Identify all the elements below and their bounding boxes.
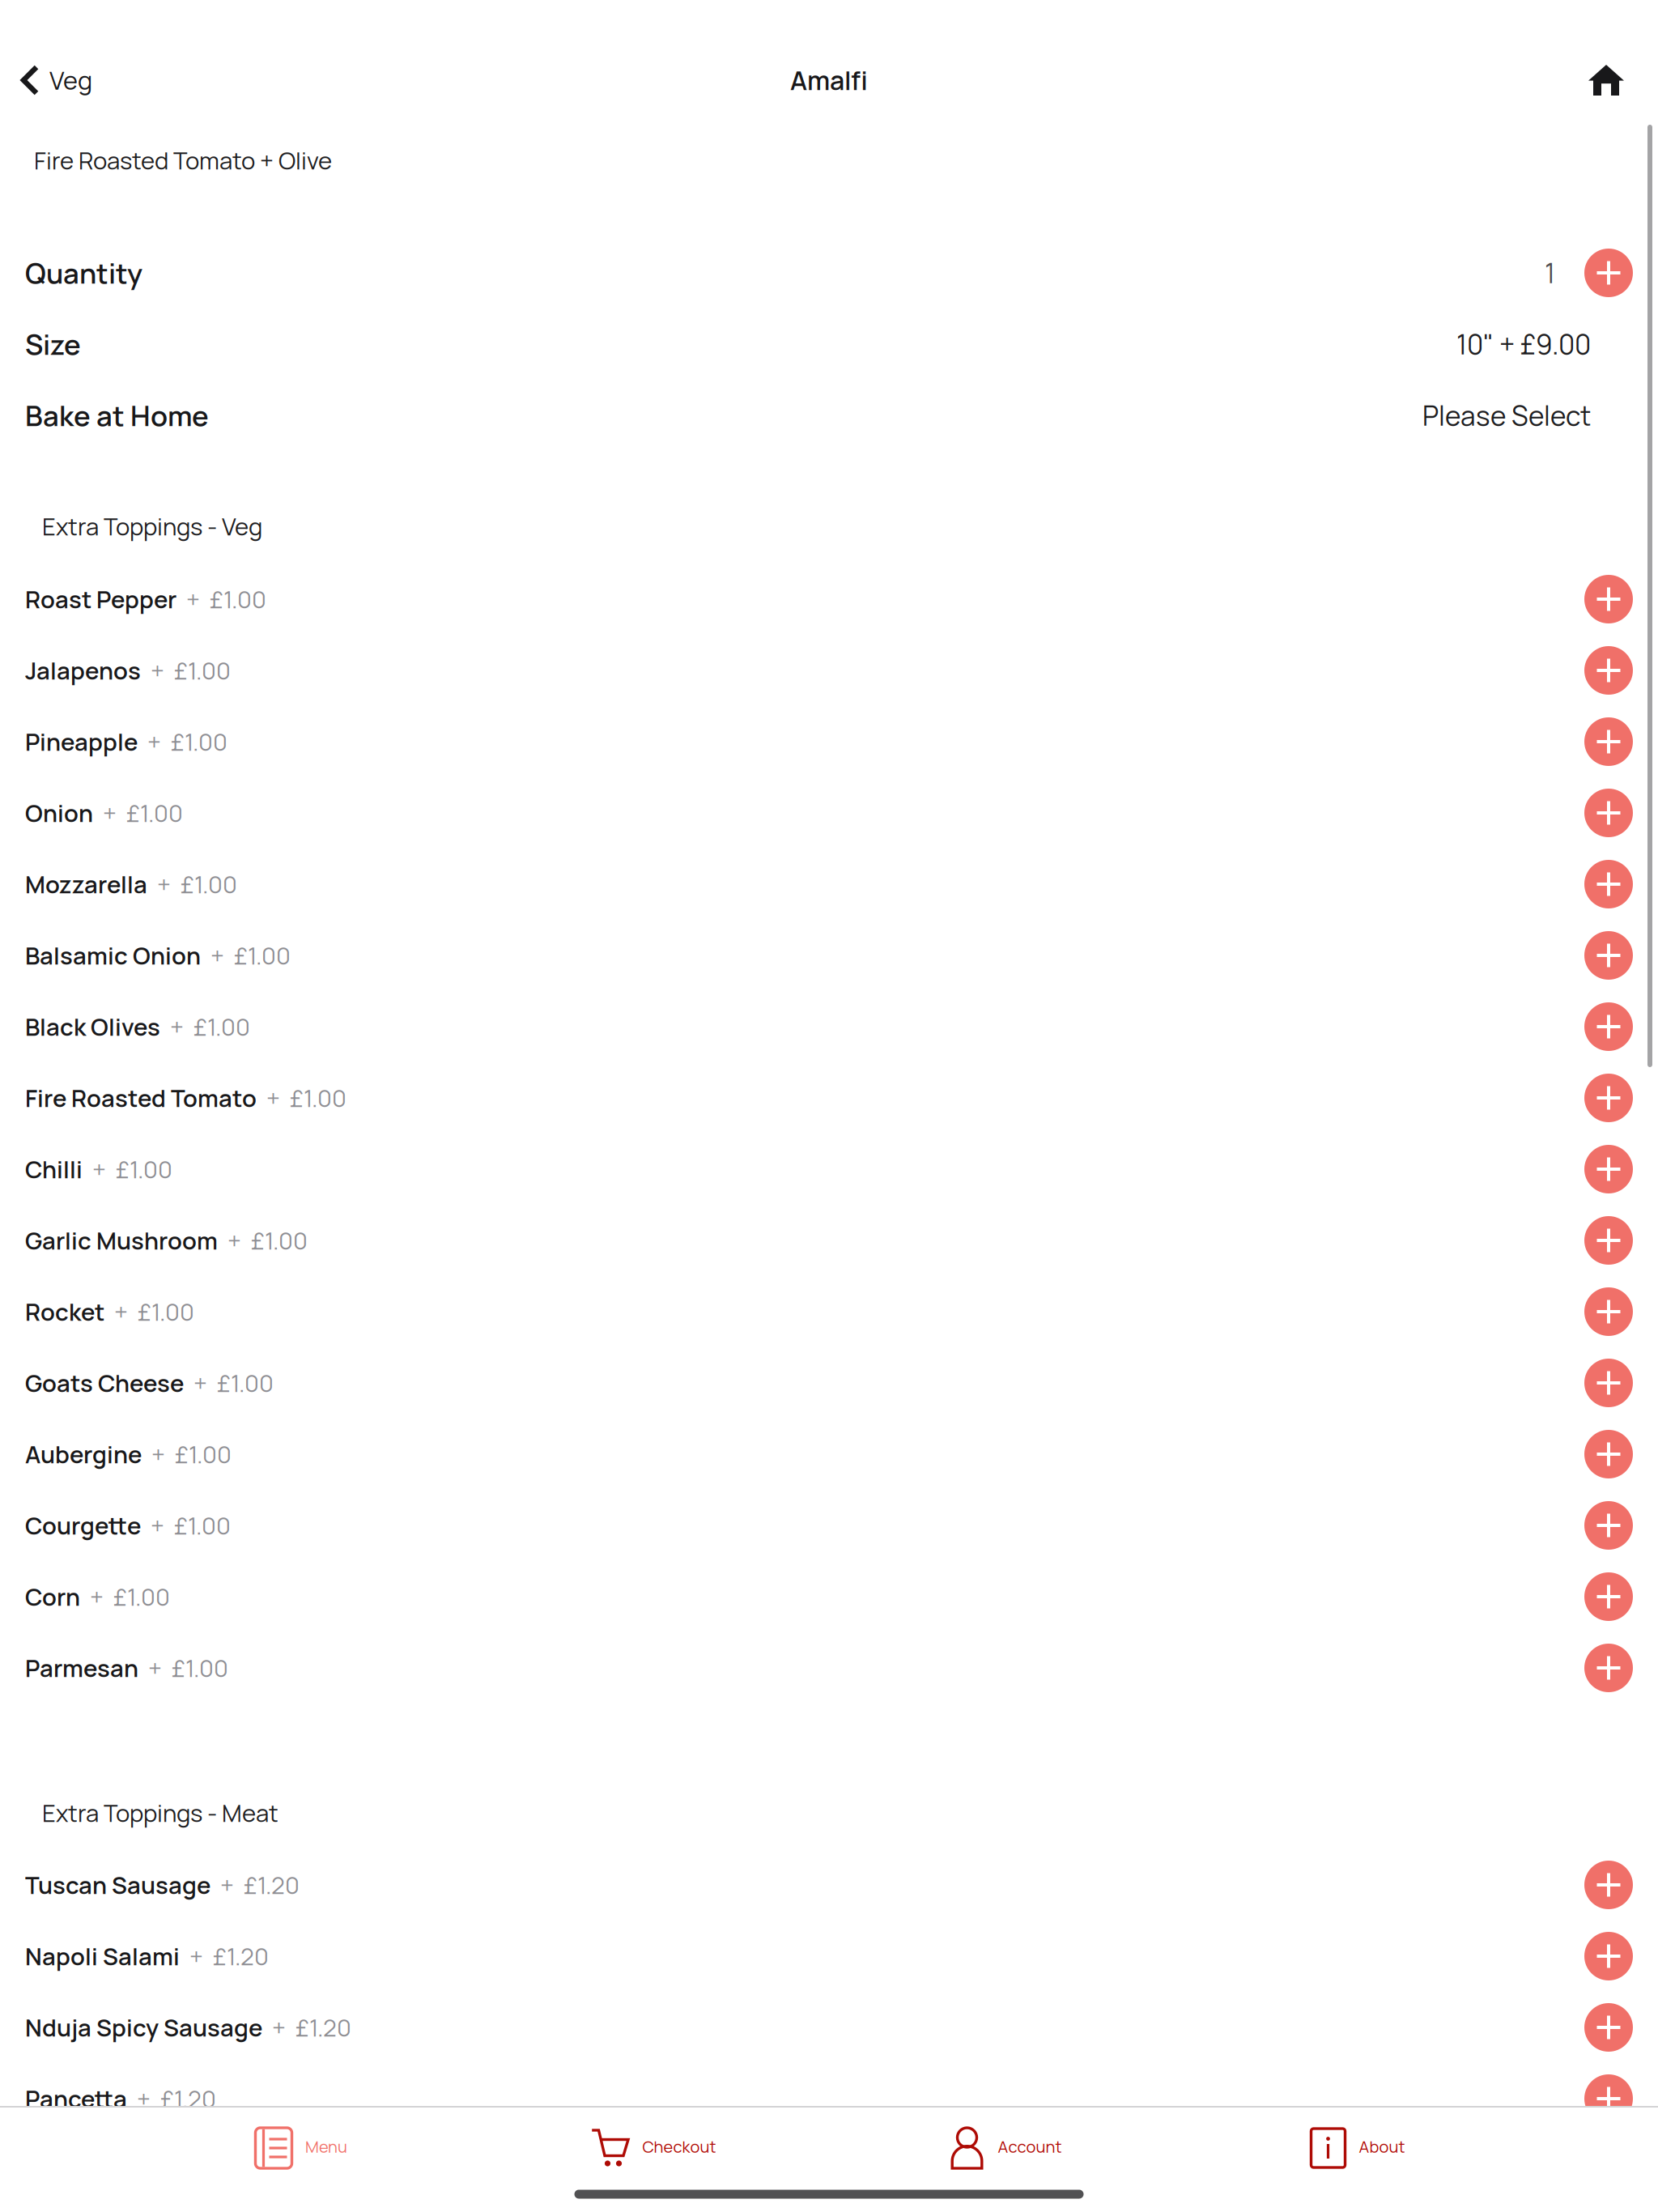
button[interactable]: Add (1584, 1359, 1633, 1407)
staticText: + £1.00 (218, 1224, 308, 1257)
button[interactable]: Add (1584, 860, 1633, 908)
button[interactable]: Parmesan (0, 1632, 1658, 1704)
staticText: Rocket (25, 1295, 104, 1328)
button[interactable]: Add (1584, 1861, 1633, 1909)
staticText: Extra Toppings - Meat (42, 1797, 278, 1829)
button[interactable]: Black Olives (0, 991, 1658, 1062)
staticText: + £1.00 (257, 1082, 346, 1114)
button[interactable]: Aubergine (0, 1419, 1658, 1490)
staticText: About (1359, 2135, 1405, 2157)
staticText: Garlic Mushroom (25, 1224, 218, 1257)
staticText: Onion (25, 797, 93, 829)
button[interactable]: Add (1584, 575, 1633, 623)
button[interactable]: Pineapple (0, 706, 1658, 777)
button[interactable]: Add (1584, 646, 1633, 695)
button[interactable]: Menu (125, 2108, 477, 2185)
staticText: Size (25, 325, 81, 363)
staticText: Veg (49, 63, 92, 97)
staticText: + £1.00 (83, 1153, 172, 1185)
button[interactable]: Chilli (0, 1134, 1658, 1205)
staticText: 1 (1545, 254, 1555, 291)
button[interactable]: About (1181, 2108, 1533, 2185)
button[interactable]: Garlic Mushroom (0, 1205, 1658, 1276)
button[interactable]: Onion (0, 777, 1658, 849)
button[interactable]: Add (1584, 2074, 1633, 2123)
button[interactable]: Roast Pepper (0, 564, 1658, 635)
staticText: + £1.00 (201, 939, 291, 972)
staticText: + £1.00 (138, 725, 227, 758)
staticText: Account (998, 2135, 1062, 2157)
staticText: Please Select (1422, 397, 1591, 434)
staticText: + £1.00 (93, 797, 183, 829)
button[interactable]: Add (1584, 1145, 1633, 1193)
button[interactable]: Mozzarella (0, 849, 1658, 920)
staticText: + £1.20 (210, 1869, 300, 1901)
button[interactable]: Add (1584, 1644, 1633, 1692)
button[interactable]: Size (0, 308, 1658, 380)
staticText: + £1.00 (160, 1010, 250, 1043)
button[interactable]: Add (1584, 789, 1633, 837)
staticText: + £1.00 (141, 1509, 231, 1542)
staticText: Fire Roasted Tomato + Olive (34, 144, 332, 177)
button[interactable]: Tuscan Sausage (0, 1849, 1658, 1921)
button[interactable]: Add (1584, 1572, 1633, 1621)
staticText: Corn (25, 1580, 80, 1613)
staticText: Tuscan Sausage (25, 1869, 210, 1901)
staticText: Bake at Home (25, 396, 209, 435)
staticText: Roast Pepper (25, 583, 176, 615)
button[interactable]: Home (1564, 43, 1658, 117)
staticText: Black Olives (25, 1010, 160, 1043)
button[interactable]: Veg (0, 43, 107, 117)
staticText: 10" + £9.00 (1456, 326, 1591, 362)
staticText: Parmesan (25, 1652, 138, 1684)
staticText: Balsamic Onion (25, 939, 201, 972)
staticText: + £1.00 (184, 1367, 274, 1399)
staticText: Nduja Spicy Sausage (25, 2011, 262, 2044)
staticText: Mozzarella (25, 868, 147, 900)
button[interactable]: Napoli Salami (0, 1921, 1658, 1992)
staticText: Napoli Salami (25, 1940, 180, 1972)
button[interactable]: Balsamic Onion (0, 920, 1658, 991)
button[interactable]: Add (1584, 1501, 1633, 1550)
staticText: + £1.20 (262, 2011, 351, 2044)
button[interactable]: Corn (0, 1561, 1658, 1632)
staticText: + £1.00 (104, 1295, 194, 1328)
staticText: Courgette (25, 1509, 141, 1542)
button[interactable]: Add (1584, 249, 1633, 297)
staticText: Menu (305, 2135, 347, 2157)
button[interactable]: Add (1584, 931, 1633, 980)
button[interactable]: Pancetta (0, 2063, 1658, 2134)
staticText: + £1.00 (138, 1652, 228, 1684)
button[interactable]: Goats Cheese (0, 1347, 1658, 1419)
staticText: Checkout (642, 2135, 716, 2157)
staticText: Extra Toppings - Veg (42, 510, 262, 543)
button[interactable]: Add (1584, 1287, 1633, 1336)
staticText: + £1.00 (176, 583, 266, 615)
button[interactable]: Fire Roasted Tomato (0, 1062, 1658, 1134)
staticText: Quantity (25, 254, 142, 292)
staticText: Aubergine (25, 1438, 142, 1470)
button[interactable]: Add (1584, 1216, 1633, 1265)
button[interactable]: Checkout (477, 2108, 829, 2185)
button[interactable]: Account (829, 2108, 1181, 2185)
button[interactable]: Nduja Spicy Sausage (0, 1992, 1658, 2063)
button[interactable]: Quantity (0, 237, 1658, 308)
button[interactable]: Bake at Home (0, 380, 1658, 451)
button[interactable]: Rocket (0, 1276, 1658, 1347)
staticText: Chilli (25, 1153, 83, 1185)
staticText: + £1.00 (141, 654, 231, 687)
button[interactable]: Jalapenos (0, 635, 1658, 706)
button[interactable]: Add (1584, 717, 1633, 766)
button[interactable]: Add (1584, 1430, 1633, 1478)
button[interactable]: Add (1584, 1074, 1633, 1122)
button[interactable]: Add (1584, 1932, 1633, 1980)
staticText: Amalfi (790, 62, 868, 98)
button[interactable]: Add (1584, 1002, 1633, 1051)
staticText: + £1.00 (80, 1580, 170, 1613)
button[interactable]: Add (1584, 2003, 1633, 2052)
staticText: Pineapple (25, 725, 138, 758)
button[interactable]: Courgette (0, 1490, 1658, 1561)
staticText: Pancetta (25, 2082, 127, 2115)
staticText: + £1.00 (142, 1438, 232, 1470)
staticText: + £1.00 (147, 868, 237, 900)
